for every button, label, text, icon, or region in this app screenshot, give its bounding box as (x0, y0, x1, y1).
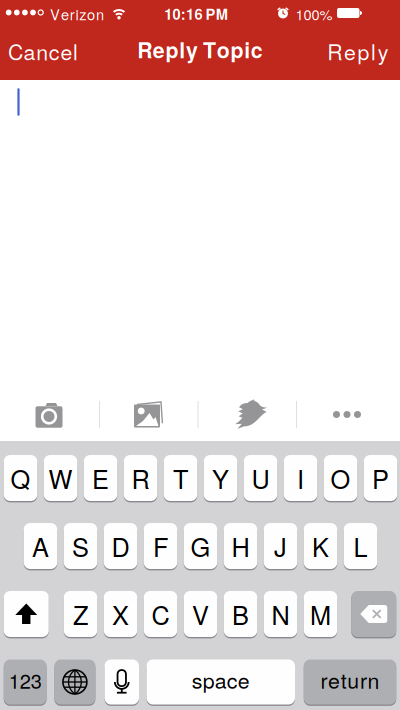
button[interactable]: X (104, 591, 137, 637)
button[interactable]: Z (64, 591, 97, 637)
staticText: r (360, 665, 367, 694)
staticText: 1 (164, 4, 172, 24)
staticText: e (328, 665, 340, 694)
staticText: G (190, 528, 210, 564)
staticText: D (111, 528, 129, 564)
staticText: C (151, 596, 169, 632)
staticText: P (205, 4, 215, 24)
staticText: E (92, 460, 109, 496)
button[interactable]: C (8, 36, 78, 66)
staticText: o (87, 4, 95, 24)
button[interactable]: K (304, 523, 337, 569)
staticText: Q (10, 460, 30, 496)
staticText: O (330, 460, 350, 496)
button[interactable]: F (144, 523, 177, 569)
staticText: C (8, 36, 23, 66)
button[interactable]: T (164, 455, 197, 501)
button[interactable]: Next keyboard (54, 659, 95, 704)
staticText: y (378, 36, 389, 66)
button[interactable]: Photo Library (133, 401, 163, 427)
button[interactable]: B (224, 591, 257, 637)
button[interactable]: Shift (4, 591, 49, 637)
button[interactable]: Twitter (234, 399, 268, 429)
staticText: u (347, 665, 359, 694)
staticText: H (231, 528, 249, 564)
button[interactable]: Delete (351, 591, 396, 637)
button[interactable]: P (364, 455, 397, 501)
staticText: 0 (172, 4, 180, 24)
button[interactable]: Return (304, 659, 396, 704)
button[interactable]: Dictate (104, 659, 139, 704)
staticText: 123 (9, 666, 42, 694)
staticText: n (36, 36, 48, 66)
button[interactable]: M (304, 591, 337, 637)
button[interactable]: N (264, 591, 297, 637)
staticText: i (75, 4, 78, 24)
staticText: V (50, 4, 60, 24)
staticText: R (131, 460, 149, 496)
staticText: B (232, 596, 249, 632)
staticText: 1 (186, 4, 194, 24)
staticText: I (297, 460, 304, 496)
button[interactable]: Space (146, 659, 295, 704)
staticText: U (251, 460, 269, 496)
staticText: c (49, 36, 60, 66)
staticText: n (96, 4, 104, 24)
staticText: e (61, 4, 69, 24)
button[interactable]: R (327, 36, 389, 66)
button[interactable]: C (144, 591, 177, 637)
button[interactable]: R (124, 455, 157, 501)
staticText: P (372, 460, 389, 496)
button[interactable]: W (44, 455, 77, 501)
button[interactable]: E (84, 455, 117, 501)
button[interactable]: U (244, 455, 277, 501)
button[interactable]: More (333, 411, 361, 418)
staticText: L (353, 528, 367, 564)
staticText: e (153, 35, 165, 64)
staticText: o (217, 35, 230, 64)
staticText: t (341, 665, 347, 694)
staticText: : (181, 4, 186, 24)
button[interactable]: H (224, 523, 257, 569)
button[interactable]: D (104, 523, 137, 569)
staticText: e (344, 36, 356, 66)
button[interactable]: G (184, 523, 217, 569)
staticText: c (251, 35, 263, 64)
staticText: X (112, 596, 129, 632)
staticText: a (24, 36, 36, 66)
staticText: 100% (295, 4, 332, 24)
button[interactable]: J (264, 523, 297, 569)
staticText: V (192, 596, 209, 632)
staticText: i (244, 35, 250, 64)
button[interactable]: Camera (35, 402, 62, 427)
staticText: M (216, 4, 228, 24)
button[interactable]: I (284, 455, 317, 501)
staticText: T (173, 460, 188, 496)
staticText: N (271, 596, 289, 632)
staticText: l (179, 35, 185, 64)
button[interactable]: V (184, 591, 217, 637)
staticText: W (48, 460, 72, 496)
staticText: z (79, 4, 86, 24)
button[interactable]: Numbers (4, 659, 47, 704)
button[interactable]: Y (204, 455, 237, 501)
button[interactable]: O (324, 455, 357, 501)
button[interactable]: A (24, 523, 57, 569)
staticText: l (73, 36, 78, 66)
staticText: p (230, 35, 243, 64)
button[interactable]: L (344, 523, 377, 569)
staticText: M (310, 596, 331, 632)
staticText: R (327, 36, 342, 66)
staticText: space (192, 665, 250, 694)
staticText: p (357, 36, 369, 66)
staticText: 6 (194, 4, 202, 24)
staticText: y (186, 35, 198, 64)
staticText: r (70, 4, 75, 24)
staticText: e (60, 36, 72, 66)
staticText: l (371, 36, 376, 66)
staticText: p (166, 35, 179, 64)
button[interactable]: Q (4, 455, 37, 501)
staticText: T (203, 35, 216, 64)
button[interactable]: S (64, 523, 97, 569)
staticText: R (137, 35, 152, 64)
